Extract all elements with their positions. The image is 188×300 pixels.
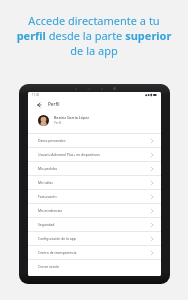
staticText: Facturación <box>38 194 57 199</box>
staticText: Perfil <box>48 101 60 107</box>
button[interactable]: Cerrar sesión <box>28 260 161 273</box>
button[interactable]: Back <box>34 100 43 109</box>
button[interactable]: Usuario Adicional Plus+ en dispositivos <box>28 148 161 161</box>
button[interactable]: Mis incidencias <box>28 204 161 217</box>
button[interactable]: Centro de transparencia <box>28 246 161 259</box>
staticText: Mis pedidos <box>38 166 58 171</box>
staticText: 11:30 <box>32 93 40 97</box>
button[interactable]: Configuración de la app <box>28 232 161 245</box>
staticText: Seguridad <box>38 222 55 227</box>
staticText: Cerrar sesión <box>38 264 60 269</box>
staticText: Mis incidencias <box>38 208 63 213</box>
button[interactable]: Datos personales <box>28 134 161 147</box>
button[interactable]: Beatriz García López <box>28 110 161 130</box>
staticText: Centro de transparencia <box>38 250 77 255</box>
staticText: Beatriz García López <box>54 115 89 120</box>
button[interactable]: Seguridad <box>28 218 161 231</box>
staticText: Accede directamente a tu perfil desde la… <box>10 13 178 58</box>
staticText: Mis tallas <box>38 180 53 185</box>
staticText: Usuario Adicional Plus+ en dispositivos <box>38 152 100 157</box>
staticText: Configuración de la app <box>38 236 76 241</box>
button[interactable]: Facturación <box>28 190 161 203</box>
staticText: Perfil <box>54 121 62 125</box>
button[interactable]: Mis pedidos <box>28 162 161 175</box>
staticText: Datos personales <box>38 138 66 143</box>
button[interactable]: Mis tallas <box>28 176 161 189</box>
